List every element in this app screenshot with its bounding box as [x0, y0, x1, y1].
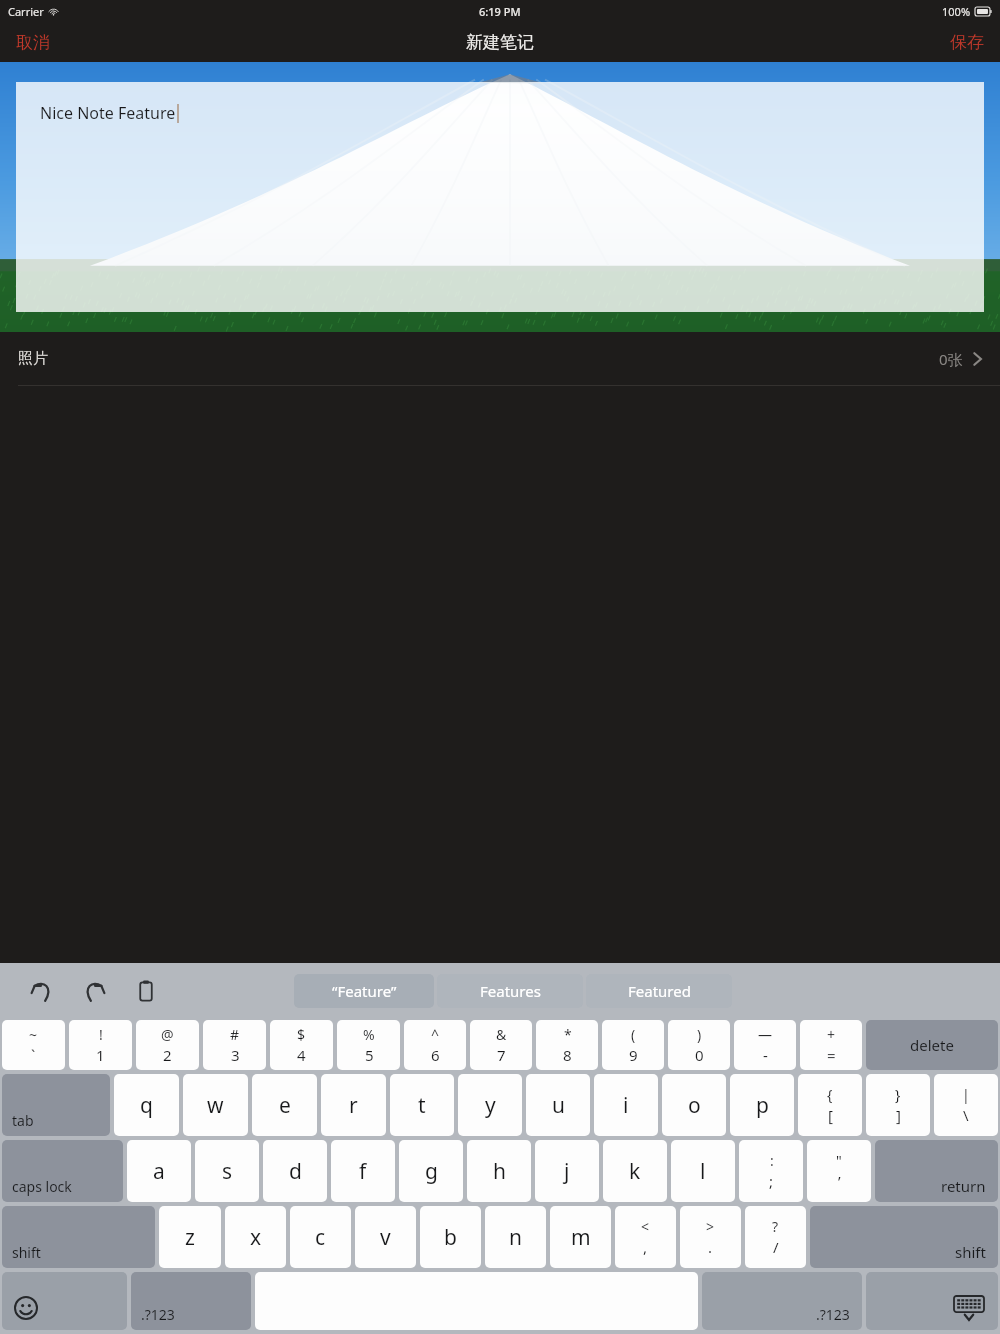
staticText: 1 [96, 1045, 105, 1065]
button[interactable]: @ [136, 1020, 199, 1070]
staticText: v [380, 1223, 391, 1252]
button[interactable]: p [730, 1074, 794, 1136]
staticText: f [359, 1157, 367, 1186]
staticText: Features [480, 981, 541, 1001]
button[interactable]: l [671, 1140, 735, 1202]
button[interactable]: ! [69, 1020, 132, 1070]
button[interactable]: .?123 [702, 1272, 862, 1330]
staticText: 0 [695, 1045, 704, 1065]
button[interactable]: ) [668, 1020, 730, 1070]
button[interactable]: w [183, 1074, 248, 1136]
staticText: 6:19 PM [479, 4, 521, 19]
button[interactable]: % [337, 1020, 400, 1070]
staticText: | [962, 1085, 970, 1104]
button[interactable]: ? [745, 1206, 806, 1268]
button[interactable]: 取消 [0, 26, 66, 59]
button[interactable]: m [550, 1206, 611, 1268]
button[interactable]: shift [2, 1206, 155, 1268]
button[interactable]: 照片 [0, 332, 1000, 385]
staticText: s [222, 1157, 233, 1186]
staticText: z [185, 1223, 195, 1252]
button[interactable]: return [875, 1140, 998, 1202]
staticText: 取消 [16, 32, 50, 53]
button[interactable]: u [526, 1074, 590, 1136]
button[interactable]: v [355, 1206, 416, 1268]
button[interactable]: d [263, 1140, 327, 1202]
button[interactable]: < [615, 1206, 676, 1268]
button[interactable]: " [807, 1140, 871, 1202]
button[interactable]: s [195, 1140, 259, 1202]
button[interactable]: ( [602, 1020, 664, 1070]
staticText: & [496, 1025, 507, 1044]
button[interactable]: { [798, 1074, 862, 1136]
button[interactable]: > [680, 1206, 741, 1268]
button[interactable]: $ [270, 1020, 333, 1070]
button[interactable]: 保存 [934, 26, 1000, 59]
staticText: 4 [297, 1045, 306, 1065]
button[interactable]: caps lock [2, 1140, 123, 1202]
button[interactable]: i [594, 1074, 658, 1136]
button[interactable]: o [662, 1074, 726, 1136]
button[interactable]: t [390, 1074, 454, 1136]
button[interactable]: Redo [74, 971, 114, 1011]
button[interactable]: r [321, 1074, 386, 1136]
staticText: p [756, 1091, 769, 1120]
staticText: ~ [29, 1025, 38, 1044]
button[interactable]: Undo [22, 971, 62, 1011]
button[interactable]: ~ [2, 1020, 65, 1070]
button[interactable]: | [934, 1074, 998, 1136]
staticText: { [827, 1085, 833, 1104]
staticText: ) [697, 1025, 702, 1044]
staticText: # [230, 1025, 240, 1044]
button[interactable]: # [203, 1020, 266, 1070]
button[interactable]: Emoji [2, 1272, 127, 1330]
button[interactable]: a [127, 1140, 191, 1202]
button[interactable]: delete [866, 1020, 998, 1070]
button[interactable]: c [290, 1206, 351, 1268]
button[interactable]: tab [2, 1074, 110, 1136]
staticText: y [485, 1091, 496, 1120]
button[interactable]: Featured [586, 974, 732, 1008]
staticText: ] [896, 1105, 901, 1125]
button[interactable]: “Feature” [294, 974, 434, 1008]
button[interactable]: } [866, 1074, 930, 1136]
staticText: shift [12, 1243, 41, 1262]
button[interactable]: n [485, 1206, 546, 1268]
button[interactable]: f [331, 1140, 395, 1202]
staticText: e [279, 1091, 291, 1120]
staticText: c [315, 1223, 326, 1252]
staticText: 2 [163, 1045, 172, 1065]
button[interactable]: — [734, 1020, 796, 1070]
staticText: > [706, 1217, 715, 1236]
staticText: 6 [431, 1045, 440, 1065]
button[interactable]: Features [437, 974, 583, 1008]
button[interactable]: + [800, 1020, 862, 1070]
button[interactable]: Hide keyboard [866, 1272, 998, 1330]
staticText: k [629, 1157, 641, 1186]
button[interactable]: : [739, 1140, 803, 1202]
button[interactable]: z [159, 1206, 221, 1268]
button[interactable]: b [420, 1206, 481, 1268]
button[interactable]: shift [810, 1206, 998, 1268]
button[interactable]: .?123 [131, 1272, 251, 1330]
staticText: . [708, 1237, 713, 1257]
button[interactable]: e [252, 1074, 317, 1136]
staticText: : [770, 1151, 774, 1170]
button[interactable]: j [535, 1140, 599, 1202]
button[interactable]: Paste [126, 971, 166, 1011]
staticText: ; [769, 1171, 774, 1191]
button[interactable]: q [114, 1074, 179, 1136]
button[interactable]: y [458, 1074, 522, 1136]
button[interactable]: ^ [404, 1020, 466, 1070]
button[interactable]: Nice Note Feature [16, 82, 984, 312]
staticText: 8 [563, 1045, 572, 1065]
button[interactable]: * [536, 1020, 598, 1070]
button[interactable]: g [399, 1140, 463, 1202]
button[interactable]: h [467, 1140, 531, 1202]
staticText: \ [963, 1105, 969, 1125]
button[interactable]: & [470, 1020, 532, 1070]
button[interactable]: k [603, 1140, 667, 1202]
staticText: ( [631, 1025, 636, 1044]
button[interactable]: x [225, 1206, 286, 1268]
